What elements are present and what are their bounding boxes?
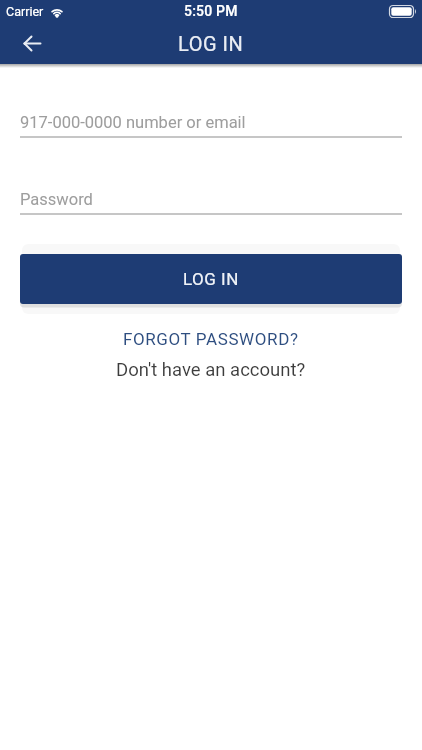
button[interactable]: Don't have an account? — [20, 359, 402, 381]
staticText: Carrier — [6, 4, 44, 19]
staticText: 5:50 PM — [184, 3, 238, 19]
staticText: Don't have an account? — [116, 359, 306, 381]
staticText: Password — [20, 190, 93, 209]
button[interactable]: LOG IN — [20, 254, 402, 304]
staticText: LOG IN — [178, 32, 244, 55]
button[interactable]: FORGOT PASSWORD? — [20, 329, 402, 349]
staticText: FORGOT PASSWORD? — [123, 329, 299, 349]
staticText: LOG IN — [183, 269, 239, 289]
staticText: 917-000-0000 number or email — [20, 113, 246, 132]
button[interactable] — [10, 22, 54, 64]
